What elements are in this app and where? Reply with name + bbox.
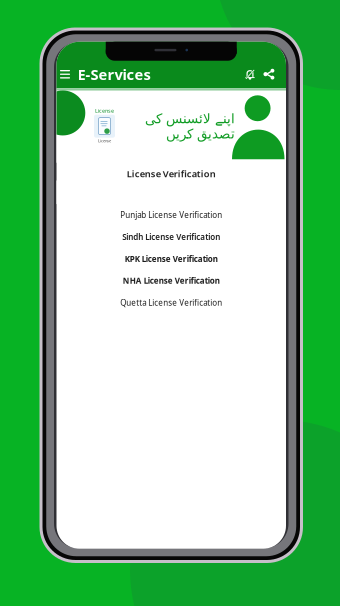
staticText: License Verification bbox=[127, 167, 216, 180]
staticText: License bbox=[95, 107, 114, 114]
staticText: Sindh License Verification bbox=[122, 232, 220, 242]
button[interactable]: Share bbox=[259, 63, 279, 85]
button[interactable]: KPK License Verification bbox=[56, 248, 286, 270]
button[interactable]: License Verification bbox=[56, 167, 286, 181]
staticText: NHA License Verification bbox=[123, 275, 220, 286]
button[interactable]: Notifications bbox=[241, 63, 259, 85]
button[interactable]: E-Services bbox=[73, 63, 154, 85]
button[interactable]: Sindh License Verification bbox=[56, 226, 286, 248]
staticText: License bbox=[98, 138, 111, 143]
staticText: KPK License Verification bbox=[125, 253, 218, 264]
staticText: E-Services bbox=[77, 64, 150, 84]
button[interactable]: NHA License Verification bbox=[56, 270, 286, 292]
button[interactable]: Menu bbox=[56, 63, 73, 85]
staticText: اپنے لائسنس کی تصدیق کریں bbox=[145, 111, 235, 141]
staticText: Punjab License Verification bbox=[120, 210, 222, 220]
button[interactable]: Punjab License Verification bbox=[56, 204, 286, 226]
button[interactable]: Quetta License Verification bbox=[56, 292, 286, 313]
staticText: Quetta License Verification bbox=[120, 297, 222, 308]
